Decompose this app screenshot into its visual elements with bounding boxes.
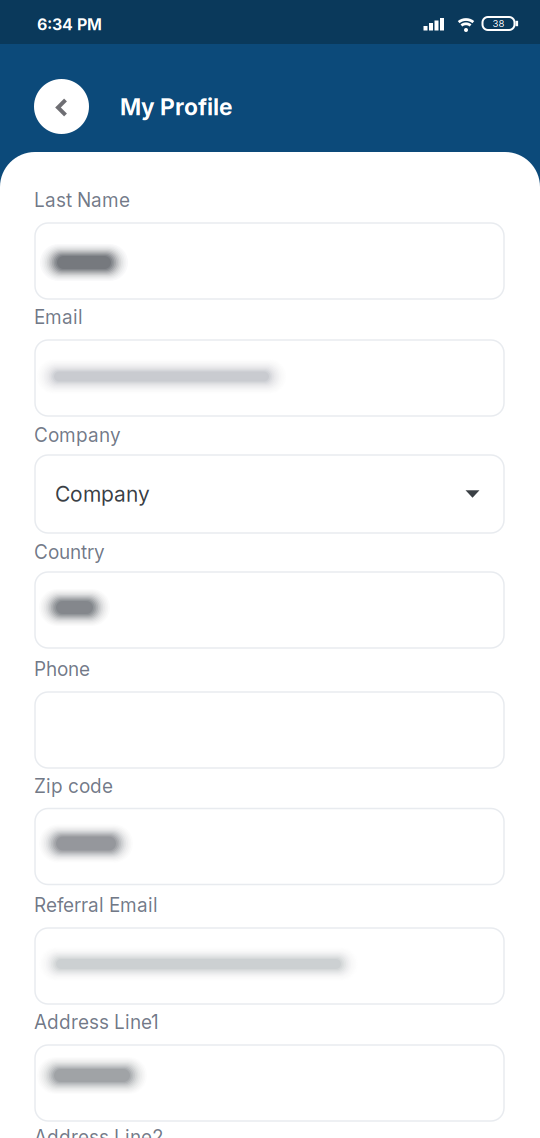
staticText: My Profile xyxy=(120,93,233,121)
staticText: Last Name xyxy=(34,188,130,211)
staticText: Address Line2 xyxy=(34,1125,164,1138)
button[interactable]: Back xyxy=(34,79,89,134)
staticText: Zip code xyxy=(34,774,113,797)
staticText: Company xyxy=(55,481,150,507)
staticText: Phone xyxy=(34,657,90,680)
staticText: Company xyxy=(34,423,121,446)
staticText: Country xyxy=(34,540,105,563)
staticText: Referral Email xyxy=(34,893,158,916)
staticText: Address Line1 xyxy=(34,1010,159,1033)
staticText: Email xyxy=(34,305,83,328)
button[interactable]: Company xyxy=(35,455,504,533)
staticText: 6:34 PM xyxy=(37,15,102,34)
staticText: 38 xyxy=(492,18,504,29)
